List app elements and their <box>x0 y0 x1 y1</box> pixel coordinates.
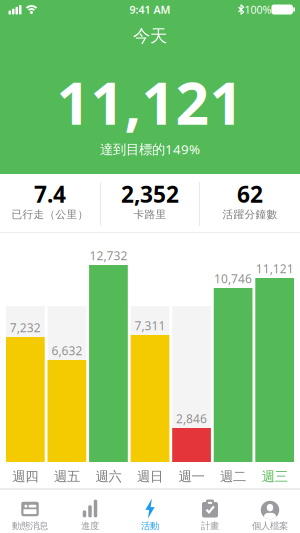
button[interactable]: 7,232 <box>6 233 45 489</box>
staticText: 已行走（公里） <box>11 208 88 221</box>
button[interactable]: 7,311 <box>131 233 169 489</box>
staticText: 週六 <box>95 468 121 485</box>
staticText: 活躍分鐘數 <box>222 208 277 221</box>
button[interactable]: 10,746 <box>214 233 252 489</box>
staticText: 12,732 <box>89 247 127 263</box>
button[interactable]: 動態消息 <box>0 489 60 533</box>
button[interactable]: 個人檔案 <box>240 489 300 533</box>
button[interactable]: 進度 <box>60 489 120 533</box>
staticText: 7.4 <box>34 179 66 209</box>
staticText: 9:41 AM <box>129 2 170 17</box>
staticText: 達到目標的149% <box>100 140 200 158</box>
staticText: 動態消息 <box>12 520 48 532</box>
button[interactable]: 計畫 <box>180 489 240 533</box>
staticText: 2,846 <box>176 410 207 426</box>
staticText: 11,121 <box>256 260 294 276</box>
staticText: 進度 <box>81 520 99 532</box>
staticText: 活動 <box>141 520 159 532</box>
staticText: 6,632 <box>51 342 82 358</box>
button[interactable]: 活動 <box>120 489 180 533</box>
staticText: 週一 <box>178 468 204 485</box>
button[interactable]: 11,121 <box>255 233 294 489</box>
staticText: 週三 <box>262 468 288 485</box>
staticText: 7,311 <box>134 317 165 333</box>
staticText: 62 <box>237 179 263 209</box>
staticText: 今天 <box>133 25 167 47</box>
staticText: 週日 <box>137 468 163 485</box>
button[interactable]: 6,632 <box>48 233 86 489</box>
staticText: 計畫 <box>201 520 219 532</box>
staticText: 100% <box>244 2 271 17</box>
staticText: 10,746 <box>214 270 252 286</box>
staticText: 7,232 <box>10 319 41 335</box>
button[interactable]: 12,732 <box>89 233 128 489</box>
staticText: 週二 <box>220 468 246 485</box>
staticText: 週四 <box>12 468 38 485</box>
button[interactable]: 2,846 <box>172 233 211 489</box>
staticText: 週五 <box>54 468 80 485</box>
staticText: 卡路里 <box>133 208 166 221</box>
staticText: 11,121 <box>56 63 243 141</box>
staticText: 個人檔案 <box>252 520 288 532</box>
staticText: 2,352 <box>121 179 179 209</box>
